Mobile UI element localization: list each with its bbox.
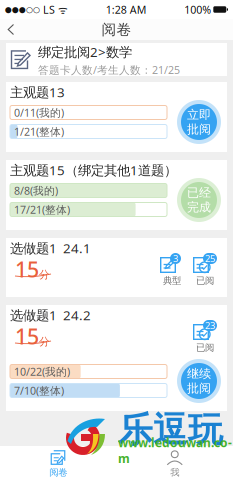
button[interactable]: 我 <box>116 450 233 478</box>
staticText: 1:28 AM <box>106 2 147 17</box>
staticText: 25 <box>205 252 215 265</box>
staticText: 我 <box>170 467 179 478</box>
staticText: 批阅 <box>187 122 211 137</box>
staticText: 阅卷 <box>101 20 131 38</box>
button[interactable]: 继续 <box>177 359 221 403</box>
staticText: 23 <box>205 319 215 332</box>
staticText: 选做题1 24.1 <box>10 239 91 257</box>
staticText: 15 <box>15 322 39 350</box>
staticText: 已经 <box>187 185 211 200</box>
staticText: 已阅 <box>196 342 214 353</box>
staticText: ᯤ <box>55 2 68 17</box>
staticText: 17/21(整体) <box>14 202 70 217</box>
staticText: 8/8(我的) <box>14 183 58 198</box>
staticText: 完成 <box>187 200 211 215</box>
staticText: www.ledouwan.com <box>118 435 232 466</box>
button[interactable]: 已经 <box>177 178 221 222</box>
staticText: 已阅 <box>196 275 214 286</box>
button[interactable]: Back <box>0 19 25 39</box>
staticText: 绑定批阅2>数学 <box>38 43 132 61</box>
staticText: 3 <box>173 252 178 265</box>
staticText: 立即 <box>187 107 211 122</box>
staticText: 答题卡人数/考生人数：21/25 <box>38 63 180 77</box>
staticText: 100% <box>184 2 211 17</box>
staticText: 阅卷 <box>49 467 67 478</box>
staticText: LS <box>40 2 55 17</box>
staticText: 分 <box>39 268 50 281</box>
button[interactable]: 立即 <box>177 100 221 144</box>
button[interactable]: 25 <box>193 253 217 286</box>
staticText: 主观题13 <box>10 83 65 101</box>
button[interactable]: 3 <box>160 253 184 286</box>
staticText: 乐逗玩 <box>118 409 223 451</box>
staticText: 选做题1 24.2 <box>10 306 91 324</box>
staticText: 主观题15（绑定其他1道题） <box>10 161 177 179</box>
button[interactable]: 23 <box>193 320 217 353</box>
staticText: 0/11(我的) <box>14 105 64 120</box>
staticText: 15 <box>15 255 39 283</box>
button[interactable]: 阅卷 <box>0 450 116 478</box>
staticText: ●●●○○ <box>5 5 40 14</box>
staticText: 10/22(我的) <box>14 364 70 379</box>
staticText: 批阅 <box>187 381 211 396</box>
staticText: 1/21(整体) <box>14 124 64 139</box>
staticText: 分 <box>39 335 50 348</box>
staticText: 继续 <box>187 366 211 381</box>
staticText: 典型 <box>163 275 181 286</box>
staticText: 7/10(整体) <box>14 383 64 398</box>
